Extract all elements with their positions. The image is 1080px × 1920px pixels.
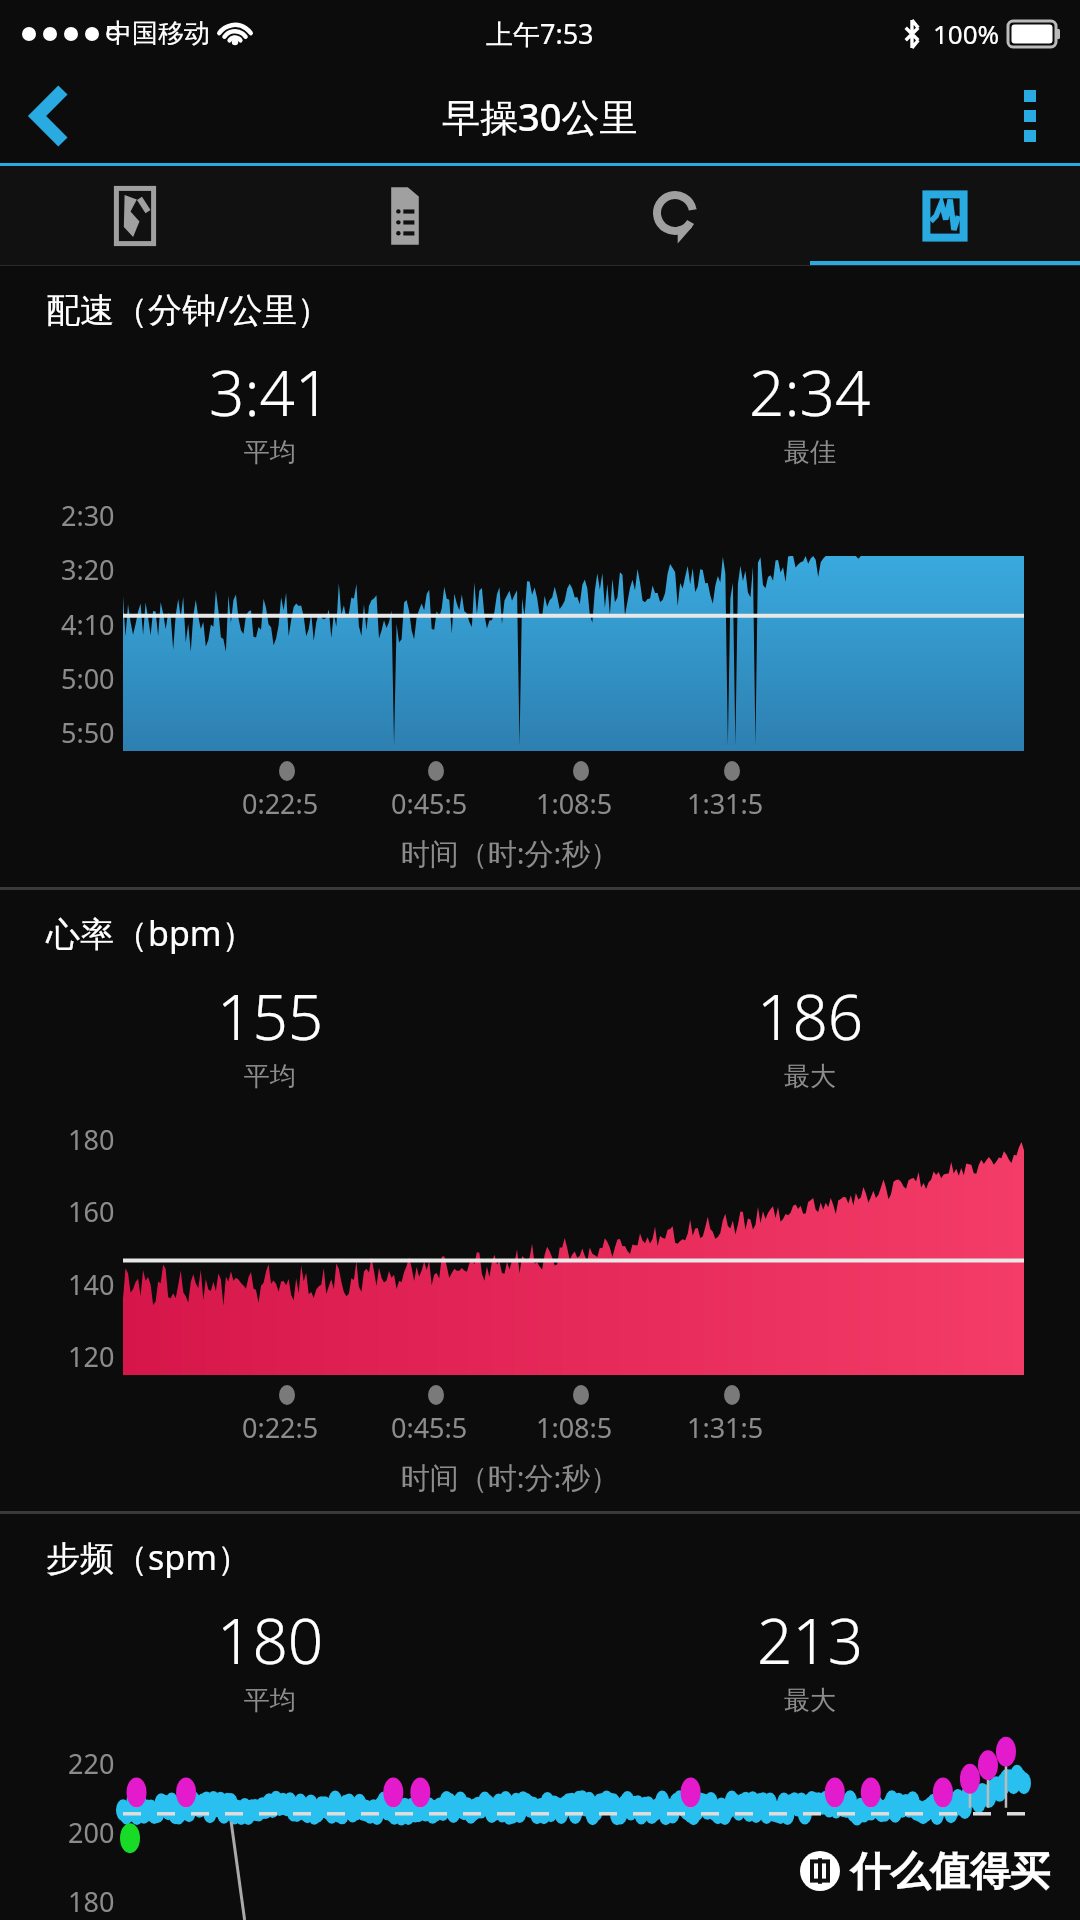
staticText: 0:45:5	[391, 1409, 468, 1446]
staticText: 4:10	[61, 606, 115, 643]
staticText: 0:45:5	[391, 785, 468, 822]
staticText: 配速（分钟/公里）	[46, 286, 331, 332]
staticText: 时间（时:分:秒）	[0, 833, 1020, 873]
staticText: 0:22:5	[242, 785, 319, 822]
staticText: 1:08:5	[536, 1409, 613, 1446]
staticText: 186	[757, 974, 864, 1058]
staticText: 5:00	[61, 660, 115, 697]
staticText: 时间（时:分:秒）	[0, 1457, 1020, 1497]
staticText: 平均	[244, 1684, 296, 1717]
staticText: 什么值得买	[850, 1846, 1050, 1896]
button[interactable]: More options	[980, 66, 1080, 166]
staticText: 160	[68, 1193, 115, 1230]
staticText: 最大	[784, 1060, 836, 1093]
button[interactable]: Back	[0, 66, 100, 166]
staticText: 180	[68, 1121, 115, 1158]
button[interactable]: Laps	[540, 166, 810, 266]
staticText: 0:22:5	[242, 1409, 319, 1446]
staticText: 中国移动	[106, 17, 210, 50]
staticText: 155	[217, 974, 324, 1058]
button[interactable]: Map	[0, 166, 270, 266]
staticText: 早操30公里	[442, 90, 638, 142]
staticText: 上午7:53	[486, 15, 594, 52]
staticText: 1:08:5	[536, 785, 613, 822]
staticText: 220	[68, 1745, 115, 1782]
staticText: 平均	[244, 436, 296, 469]
staticText: 最大	[784, 1684, 836, 1717]
staticText: 1:31:5	[687, 1409, 764, 1446]
staticText: 2:30	[61, 497, 115, 534]
button[interactable]: Charts	[810, 166, 1080, 266]
staticText: 2:34	[749, 350, 871, 434]
button[interactable]: Details	[270, 166, 540, 266]
staticText: 200	[68, 1814, 115, 1851]
staticText: 心率（bpm）	[46, 910, 256, 956]
staticText: 最佳	[784, 436, 836, 469]
staticText: 3:41	[209, 350, 331, 434]
staticText: 120	[68, 1338, 115, 1375]
staticText: 1:31:5	[687, 785, 764, 822]
staticText: 140	[68, 1266, 115, 1303]
staticText: 180	[68, 1883, 115, 1920]
staticText: 213	[757, 1598, 864, 1682]
staticText: 180	[217, 1598, 324, 1682]
staticText: 100%	[933, 16, 1000, 51]
staticText: 步频（spm）	[46, 1534, 251, 1580]
staticText: 5:50	[61, 714, 115, 751]
staticText: 3:20	[61, 551, 115, 588]
staticText: 平均	[244, 1060, 296, 1093]
